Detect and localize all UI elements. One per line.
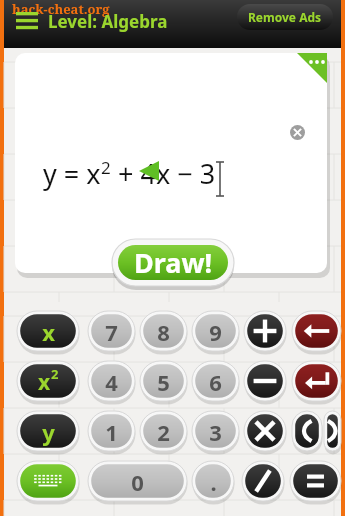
button[interactable]: Plus (244, 311, 286, 353)
button[interactable]: Menu (12, 6, 42, 36)
staticText: Draw! (134, 244, 213, 281)
staticText: 2 (157, 417, 170, 447)
button[interactable]: 0 (88, 461, 187, 503)
button[interactable]: Enter (292, 361, 341, 403)
button[interactable]: 6 (192, 361, 239, 403)
button[interactable]: Remove Ads (237, 4, 333, 30)
button[interactable]: x (17, 361, 79, 403)
staticText: 1 (105, 417, 118, 447)
staticText: Remove Ads (248, 9, 322, 25)
button[interactable]: Draw! (112, 239, 234, 289)
staticText: 2 (101, 156, 111, 179)
staticText: x (42, 317, 55, 347)
staticText: 4 (105, 367, 118, 397)
button[interactable]: x (17, 311, 79, 353)
button[interactable]: . (192, 461, 234, 503)
button[interactable]: Keyboard (17, 461, 79, 503)
staticText: 5 (157, 367, 170, 397)
button[interactable]: Clear (286, 121, 308, 143)
button[interactable]: 3 (192, 411, 239, 453)
button[interactable]: Minus (244, 361, 286, 403)
button[interactable]: 4 (88, 361, 135, 403)
button[interactable]: Backspace (292, 311, 341, 353)
button[interactable]: 8 (140, 311, 187, 353)
button[interactable]: 9 (192, 311, 239, 353)
button[interactable]: Divide (242, 461, 284, 503)
staticText: x (38, 368, 51, 397)
button[interactable]: Equals (290, 461, 341, 503)
staticText: 7 (105, 317, 118, 347)
staticText: 8 (157, 317, 170, 347)
staticText: 9 (209, 317, 222, 347)
button[interactable]: 7 (88, 311, 135, 353)
button[interactable]: y (17, 411, 79, 453)
staticText: hack-cheat.org (12, 0, 110, 18)
staticText: 3 (209, 417, 222, 447)
staticText: 0 (131, 467, 144, 497)
staticText: y = x (43, 155, 101, 192)
staticText: y (42, 417, 55, 447)
button[interactable]: 5 (140, 361, 187, 403)
button[interactable]: Multiply (244, 411, 286, 453)
button[interactable]: Left parenthesis (292, 411, 322, 453)
staticText: 6 (209, 367, 222, 397)
staticText: 2 (51, 365, 59, 383)
staticText: . (210, 467, 217, 497)
staticText: Level: Algebra (48, 10, 168, 33)
staticText: + 4x − 3 (111, 155, 216, 192)
button[interactable]: Right parenthesis (324, 411, 341, 453)
button[interactable]: 2 (140, 411, 187, 453)
button[interactable]: 1 (88, 411, 135, 453)
